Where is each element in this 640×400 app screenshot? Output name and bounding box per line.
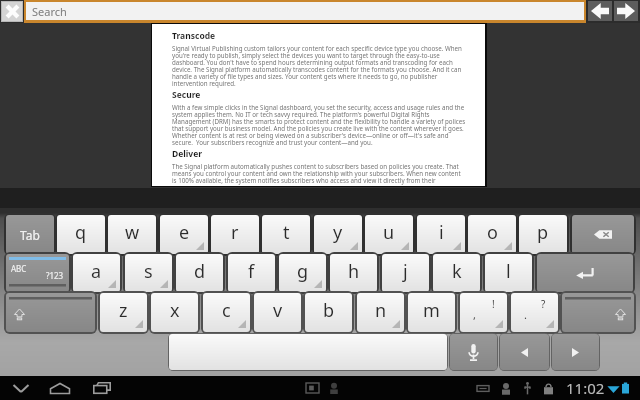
staticText: The Signal platform automatically pushes… [172, 162, 466, 185]
button[interactable]: Search [26, 2, 584, 20]
staticText: r [231, 220, 239, 245]
button[interactable]: ! [460, 293, 507, 332]
button[interactable]: t [262, 215, 310, 254]
staticText: w [125, 220, 140, 245]
staticText: n [375, 298, 387, 323]
button[interactable]: Left [500, 334, 549, 370]
button[interactable]: d [176, 254, 223, 292]
button[interactable]: Tab [6, 215, 54, 254]
staticText: ABC [11, 263, 27, 274]
staticText: k [452, 259, 462, 284]
staticText: i [439, 220, 444, 245]
staticText: s [144, 259, 153, 284]
button[interactable]: k [433, 254, 480, 292]
staticText: Deliver [172, 148, 203, 160]
button[interactable]: n [357, 293, 404, 332]
button[interactable]: ABC [6, 254, 69, 292]
staticText: 11:02 [566, 378, 605, 398]
staticText: f [248, 259, 255, 284]
staticText: o [487, 220, 498, 245]
staticText: e [179, 220, 190, 245]
button[interactable]: e [160, 215, 208, 254]
button[interactable]: p [519, 215, 567, 254]
staticText: x [170, 298, 180, 323]
button[interactable]: Back [588, 1, 612, 21]
staticText: Signal Virtual Publishing custom tailors… [172, 44, 466, 88]
button[interactable]: j [382, 254, 429, 292]
button[interactable]: ? [511, 293, 558, 332]
staticText: ?123 [46, 270, 64, 281]
button[interactable]: a [73, 254, 120, 292]
button[interactable]: v [254, 293, 301, 332]
button[interactable]: m [408, 293, 455, 332]
staticText: With a few simple clicks in the Signal d… [172, 103, 466, 147]
button[interactable]: r [211, 215, 259, 254]
button[interactable]: g [279, 254, 326, 292]
button[interactable]: x [151, 293, 198, 332]
button[interactable]: f [228, 254, 275, 292]
staticText: l [506, 259, 511, 284]
staticText: t [283, 220, 290, 245]
button[interactable]: b [305, 293, 352, 332]
button[interactable]: Space [169, 334, 447, 370]
button[interactable]: o [468, 215, 516, 254]
button[interactable]: c [203, 293, 250, 332]
staticText: b [323, 298, 335, 323]
staticText: v [273, 298, 283, 323]
button[interactable]: s [125, 254, 172, 292]
staticText: p [537, 220, 549, 245]
staticText: Search [32, 4, 67, 19]
staticText: m [423, 298, 440, 323]
button[interactable]: Forward [614, 1, 638, 21]
button[interactable]: Shift [562, 293, 634, 332]
staticText: a [91, 259, 102, 284]
staticText: c [222, 298, 231, 323]
button[interactable]: h [330, 254, 377, 292]
staticText: u [383, 220, 395, 245]
button[interactable]: z [100, 293, 147, 332]
button[interactable]: l [485, 254, 532, 292]
staticText: , [473, 307, 476, 322]
button[interactable]: Close [2, 2, 22, 21]
staticText: Tab [20, 227, 40, 243]
button[interactable]: u [365, 215, 413, 254]
staticText: d [194, 259, 206, 284]
button[interactable]: Enter [537, 254, 633, 292]
staticText: . [524, 307, 527, 322]
staticText: Secure [172, 89, 201, 101]
button[interactable]: Right [552, 334, 599, 370]
staticText: Transcode [172, 30, 216, 42]
button[interactable]: i [417, 215, 465, 254]
button[interactable]: Recents [83, 376, 120, 400]
button[interactable]: w [108, 215, 156, 254]
staticText: g [297, 259, 309, 284]
button[interactable]: Home [41, 376, 78, 400]
staticText: ? [541, 297, 546, 311]
button[interactable]: Voice input [450, 334, 497, 370]
button[interactable]: Hide keyboard [2, 376, 39, 400]
staticText: ! [492, 297, 495, 311]
staticText: j [403, 259, 408, 284]
staticText: h [348, 259, 360, 284]
button[interactable]: Shift [6, 293, 95, 332]
staticText: z [119, 298, 128, 323]
staticText: y [333, 220, 343, 245]
button[interactable]: q [57, 215, 105, 254]
button[interactable]: Backspace [572, 215, 634, 254]
button[interactable]: y [314, 215, 362, 254]
staticText: q [75, 220, 87, 245]
